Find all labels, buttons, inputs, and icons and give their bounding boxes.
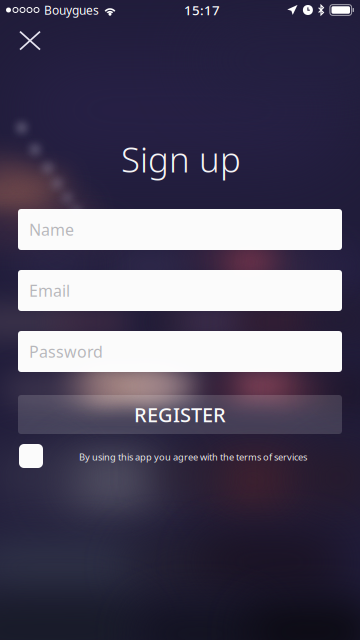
button[interactable]: REGISTER <box>18 395 342 434</box>
staticText: By using this app you agree with the ter… <box>79 451 307 463</box>
button[interactable]: Password <box>18 331 342 372</box>
button[interactable]: Agree to the terms of services <box>19 444 43 468</box>
staticText: Password <box>29 341 103 362</box>
button[interactable]: Name <box>18 209 342 250</box>
staticText: 15:17 <box>184 1 220 19</box>
staticText: Sign up <box>121 136 241 182</box>
staticText: REGISTER <box>134 401 226 428</box>
button[interactable]: Close <box>7 19 53 63</box>
button[interactable]: Email <box>18 270 342 311</box>
staticText: Bouygues <box>44 2 99 18</box>
staticText: Email <box>29 280 70 301</box>
staticText: Name <box>29 219 74 240</box>
